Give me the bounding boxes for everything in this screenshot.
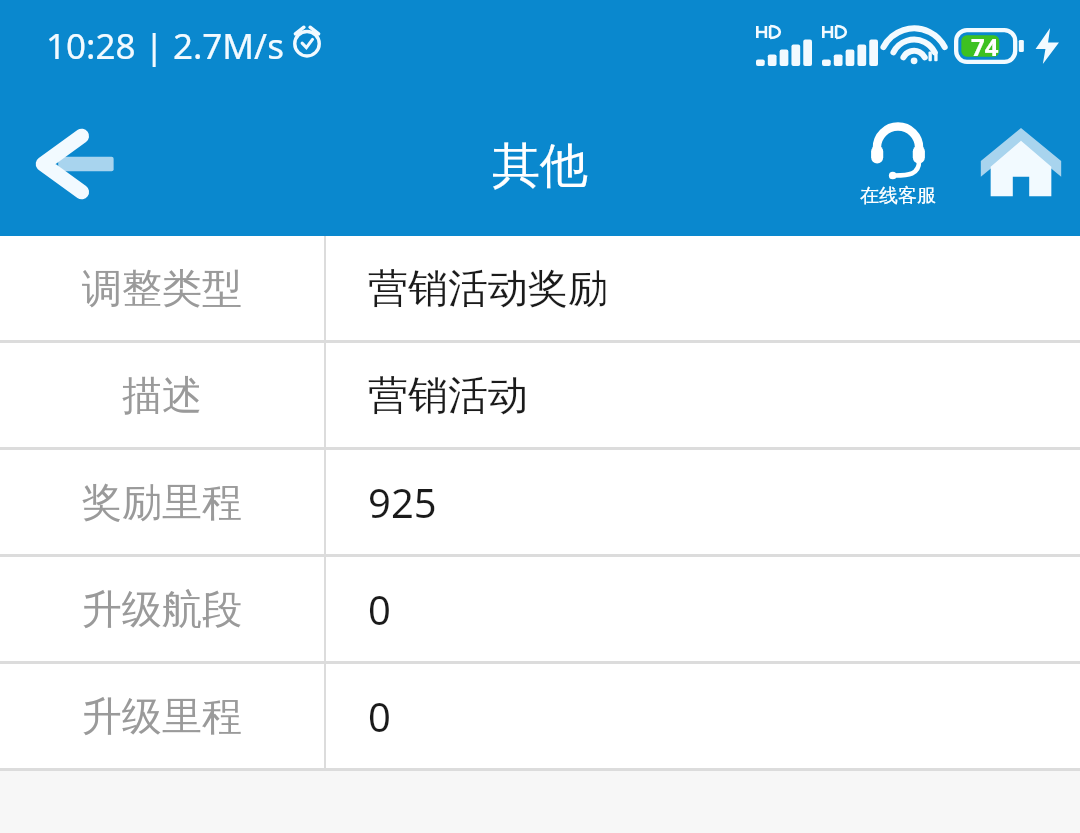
staticText: 10:28 | 2.7M/s [46, 22, 284, 70]
staticText: 925 [368, 475, 437, 529]
button[interactable]: 在线客服 [838, 92, 958, 236]
staticText: 描述 [122, 370, 202, 420]
button[interactable]: Home [962, 92, 1080, 236]
staticText: 74 [971, 30, 999, 63]
button[interactable]: 调整类型 [0, 236, 1080, 340]
staticText: 营销活动 [368, 370, 528, 420]
staticText: 0 [368, 582, 391, 636]
staticText: 营销活动奖励 [368, 263, 608, 313]
button[interactable]: 描述 [0, 343, 1080, 447]
staticText: 其他 [492, 136, 588, 196]
button[interactable]: 升级航段 [0, 557, 1080, 661]
button[interactable]: Back [0, 92, 150, 236]
button[interactable]: 升级里程 [0, 664, 1080, 768]
staticText: 奖励里程 [82, 477, 242, 527]
button[interactable]: 奖励里程 [0, 450, 1080, 554]
staticText: 调整类型 [82, 263, 242, 313]
staticText: 升级里程 [82, 691, 242, 741]
staticText: 升级航段 [82, 584, 242, 634]
staticText: 在线客服 [860, 184, 936, 208]
staticText: 0 [368, 689, 391, 743]
